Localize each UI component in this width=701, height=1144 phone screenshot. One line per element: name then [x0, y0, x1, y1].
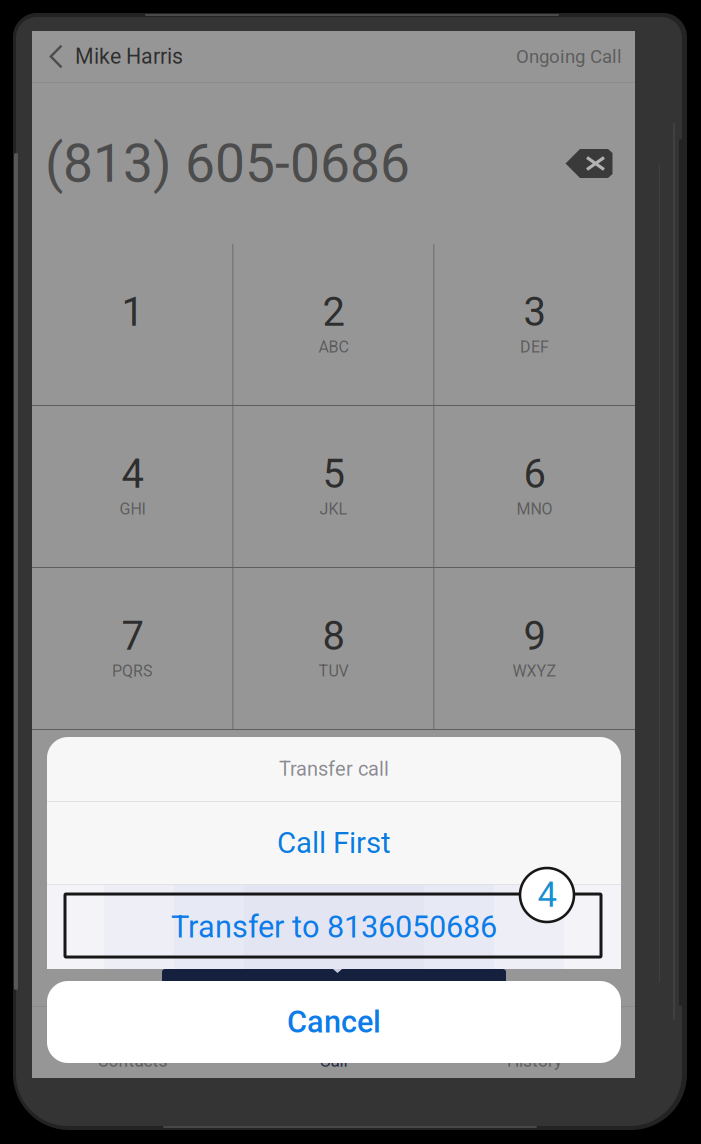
- button[interactable]: Ongoing Call: [516, 31, 635, 82]
- staticText: 8: [322, 613, 344, 660]
- staticText: MNO: [516, 500, 552, 518]
- staticText: JKL: [319, 500, 347, 518]
- staticText: Call First: [277, 826, 391, 860]
- button[interactable]: Call: [233, 1007, 434, 1078]
- button[interactable]: 3: [434, 244, 634, 405]
- staticText: Ongoing Call: [516, 46, 622, 67]
- staticText: Mike Harris: [75, 44, 183, 69]
- staticText: (813) 605-0686: [45, 132, 410, 195]
- staticText: GHI: [119, 500, 145, 518]
- staticText: 5: [322, 451, 344, 498]
- staticText: 1: [121, 289, 143, 336]
- button[interactable]: History: [434, 1007, 635, 1078]
- staticText: History: [507, 1051, 562, 1071]
- staticText: 7: [121, 613, 143, 660]
- staticText: 6: [523, 451, 545, 498]
- button[interactable]: 4: [32, 406, 232, 567]
- button[interactable]: 7: [32, 568, 232, 729]
- staticText: Cancel: [287, 1004, 381, 1040]
- staticText: DEF: [520, 338, 549, 356]
- staticText: Transfer to 8136050686: [171, 909, 497, 945]
- staticText: PQRS: [112, 662, 153, 680]
- staticText: 4: [121, 451, 143, 498]
- button[interactable]: 9: [434, 568, 634, 729]
- button[interactable]: Contacts: [32, 1007, 233, 1078]
- button[interactable]: Call First: [47, 802, 621, 884]
- staticText: Transfer call: [279, 757, 389, 781]
- button[interactable]: 8: [233, 568, 433, 729]
- staticText: Contacts: [97, 1051, 167, 1071]
- staticText: ABC: [318, 338, 348, 356]
- staticText: WXYZ: [512, 662, 556, 680]
- button[interactable]: Cancel: [47, 981, 621, 1063]
- button[interactable]: 5: [233, 406, 433, 567]
- staticText: TUV: [318, 662, 348, 680]
- staticText: 9: [523, 613, 545, 660]
- staticText: 2: [322, 289, 344, 336]
- button[interactable]: 2: [233, 244, 433, 405]
- button[interactable]: Mike Harris: [32, 31, 183, 82]
- staticText: 3: [523, 289, 545, 336]
- button[interactable]: Delete: [565, 148, 613, 179]
- button[interactable]: Transfer to 8136050686: [47, 885, 621, 969]
- button[interactable]: 6: [434, 406, 634, 567]
- button[interactable]: 1: [32, 244, 232, 405]
- staticText: 4: [537, 875, 556, 915]
- staticText: Call: [319, 1051, 347, 1071]
